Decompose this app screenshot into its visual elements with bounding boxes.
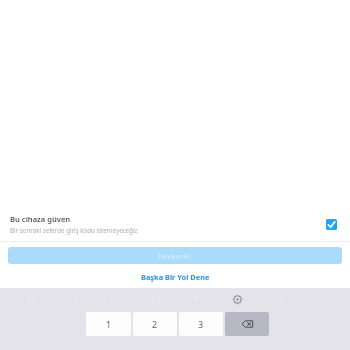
staticText: Bir sonraki seferde giriş kodu istemeyec… bbox=[10, 226, 138, 234]
button[interactable]: Ayarlar bbox=[217, 288, 258, 310]
staticText: 1 bbox=[106, 318, 112, 330]
staticText: Bu cihaza güven bbox=[10, 214, 71, 224]
staticText: 3 bbox=[198, 318, 204, 330]
button[interactable]: 2 bbox=[133, 312, 177, 336]
button[interactable]: Geri sil bbox=[225, 312, 269, 336]
button[interactable]: Başka Bir Yol Dene bbox=[0, 271, 350, 283]
button[interactable]: 3 bbox=[179, 312, 223, 336]
staticText: Devam Et bbox=[158, 251, 192, 261]
button[interactable]: Bu cihaza güven bbox=[0, 207, 350, 241]
button[interactable]: 1 bbox=[86, 312, 131, 336]
button[interactable]: Bu cihaza güven onay kutusu bbox=[320, 213, 342, 235]
staticText: 2 bbox=[152, 318, 158, 330]
button[interactable]: Devam Et bbox=[8, 247, 342, 264]
staticText: Başka Bir Yol Dene bbox=[141, 272, 210, 282]
